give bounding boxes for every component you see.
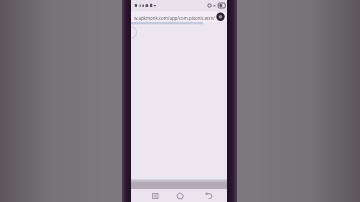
button[interactable] <box>201 189 217 202</box>
button[interactable] <box>215 11 226 22</box>
button[interactable] <box>147 189 163 202</box>
button[interactable]: w.apkmonk.com/app/com.pixonic.wxn/ <box>132 13 216 23</box>
button[interactable] <box>172 189 188 202</box>
staticText: w.apkmonk.com/app/com.pixonic.wxn/ <box>134 15 215 21</box>
